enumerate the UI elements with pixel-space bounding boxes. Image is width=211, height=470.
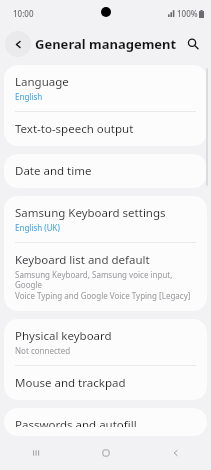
staticText: Text-to-speech output	[15, 121, 134, 137]
staticText: English	[15, 91, 43, 102]
staticText: Language	[15, 74, 69, 90]
staticText: Passwords and autofill	[15, 417, 137, 427]
button[interactable]: Language	[4, 65, 207, 111]
button[interactable]: Recent apps	[0, 436, 71, 470]
button[interactable]: Back	[141, 436, 211, 470]
button[interactable]: Back	[5, 31, 31, 57]
staticText: Keyboard list and default	[15, 252, 150, 268]
button[interactable]: Physical keyboard	[4, 319, 207, 365]
button[interactable]: Keyboard list and default	[4, 243, 207, 311]
staticText: 10:00	[13, 8, 34, 19]
button[interactable]: Text-to-speech output	[4, 112, 207, 146]
staticText: 100%	[177, 8, 198, 19]
staticText: Date and time	[15, 163, 92, 179]
button[interactable]: Mouse and trackpad	[4, 366, 207, 400]
button[interactable]: Samsung Keyboard settings	[4, 196, 207, 242]
button[interactable]: Passwords and autofill	[4, 408, 207, 436]
button[interactable]: Search	[180, 31, 206, 57]
staticText: Mouse and trackpad	[15, 375, 126, 391]
staticText: Physical keyboard	[15, 328, 112, 344]
staticText: Not connected	[15, 345, 71, 356]
staticText: General management	[35, 35, 177, 53]
staticText: English (UK)	[15, 222, 60, 233]
button[interactable]: Date and time	[4, 154, 207, 188]
staticText: Samsung Keyboard settings	[15, 205, 166, 221]
staticText: Samsung Keyboard, Samsung voice input, G…	[15, 269, 196, 302]
button[interactable]: Home	[71, 436, 141, 470]
